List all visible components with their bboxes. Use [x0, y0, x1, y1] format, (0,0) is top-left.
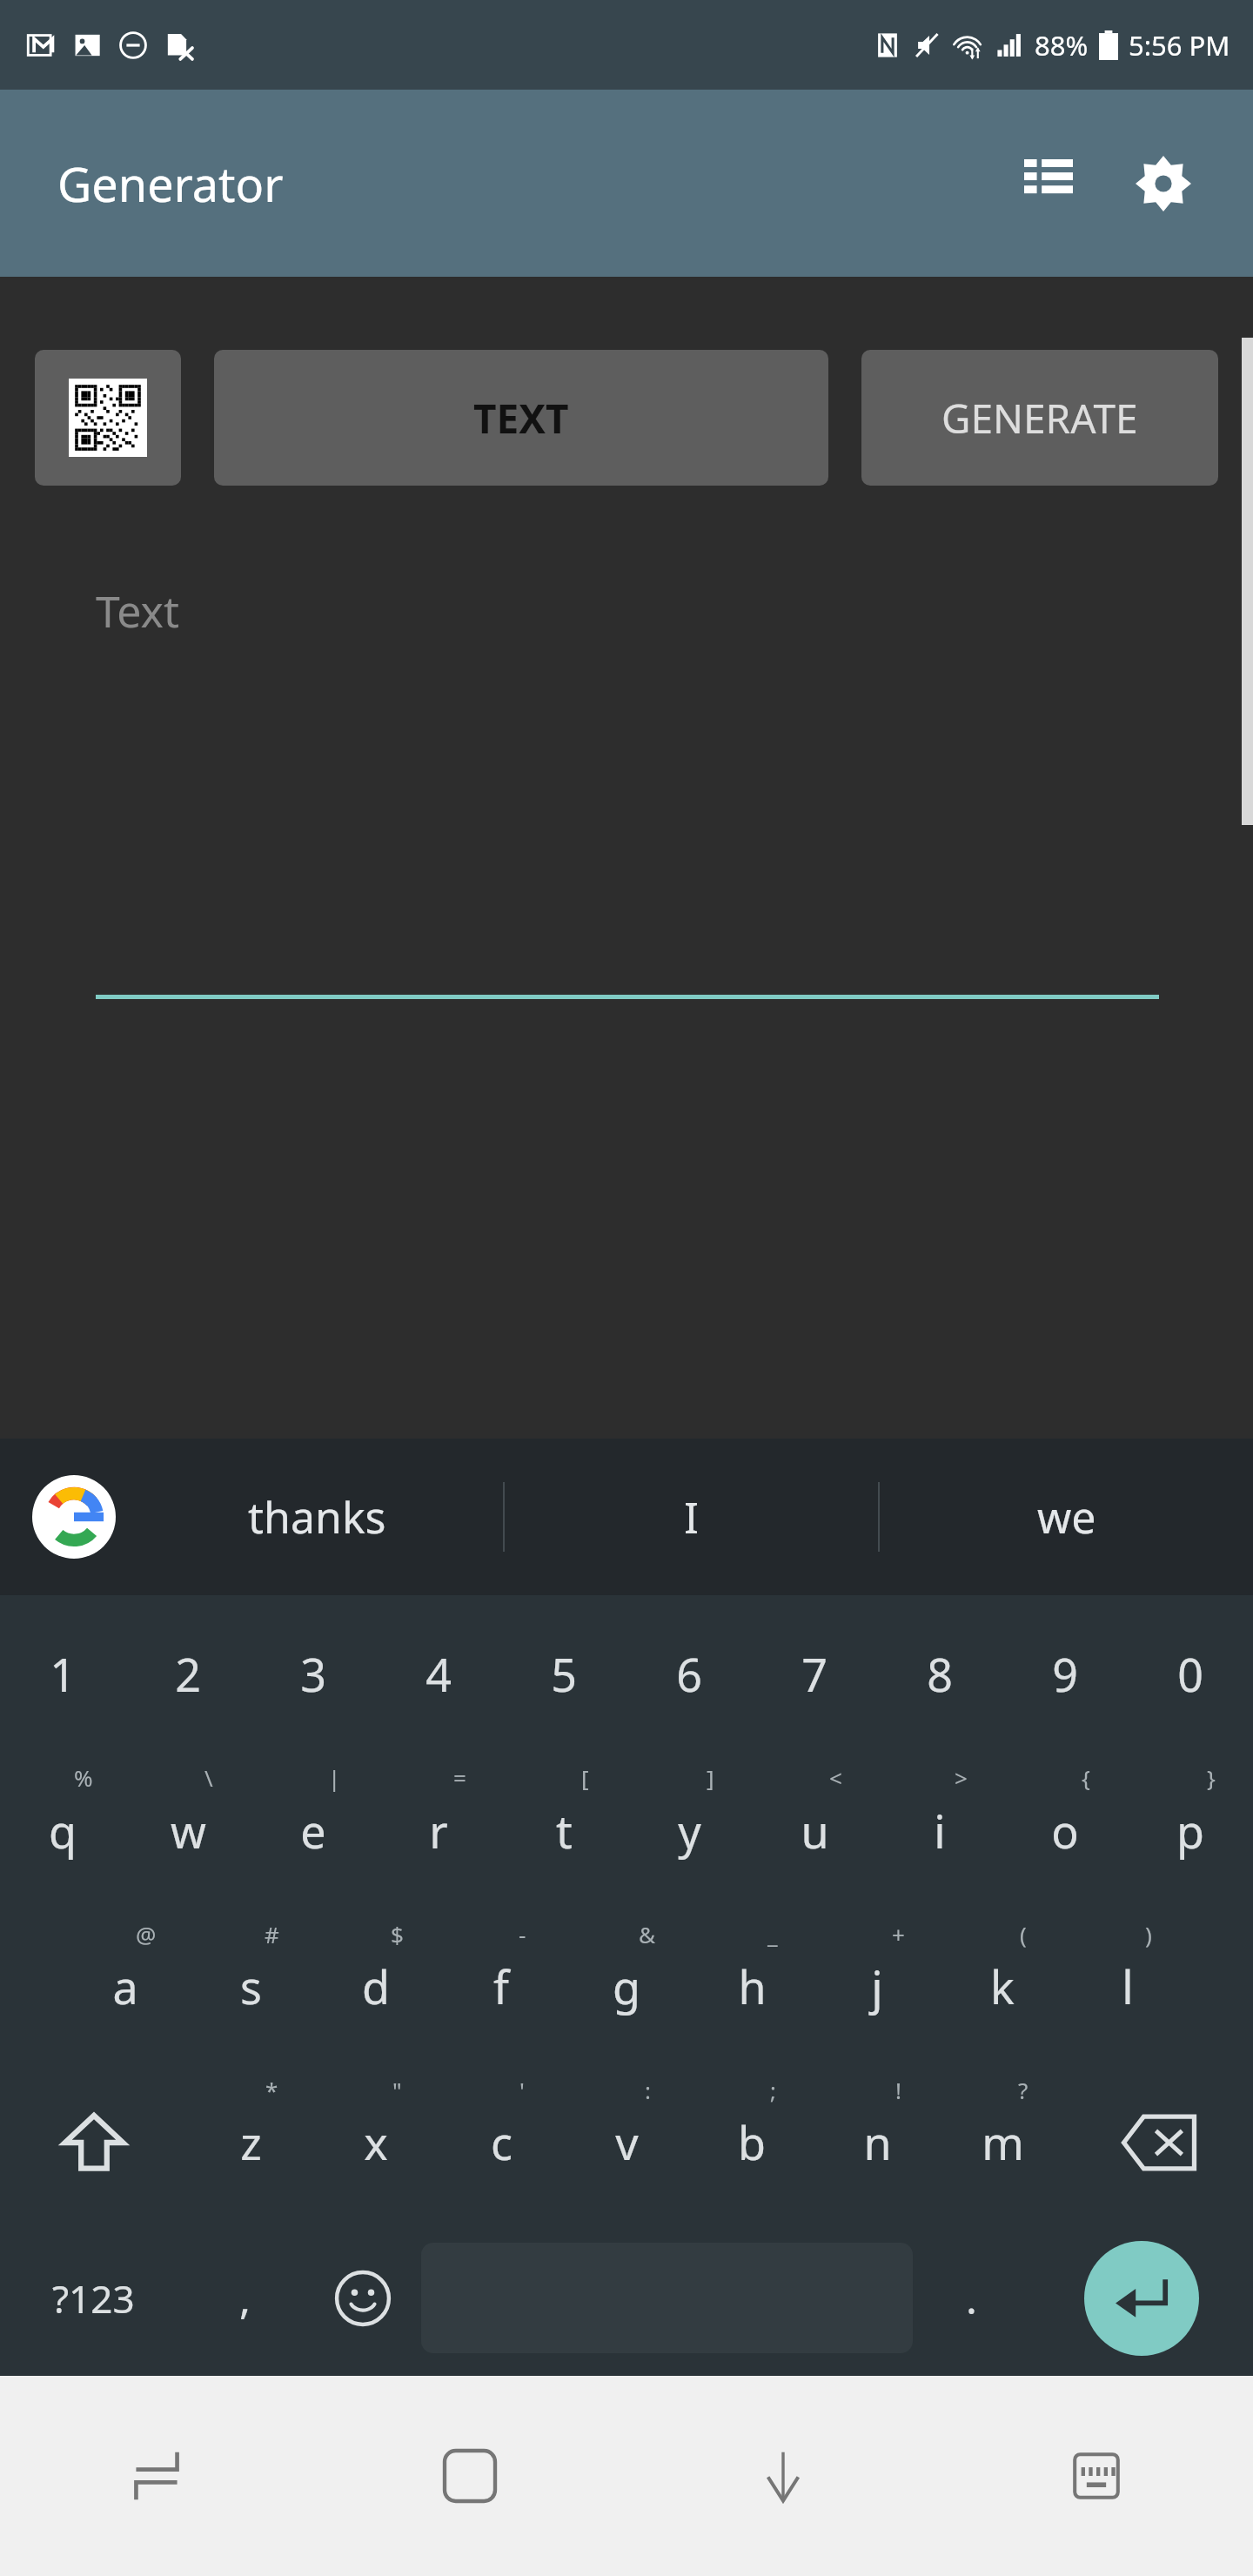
staticText: > — [955, 1762, 968, 1793]
staticText: = — [453, 1762, 466, 1793]
button[interactable]: 0 — [1128, 1595, 1253, 1752]
staticText: GENERATE — [941, 391, 1138, 446]
button[interactable]: z — [188, 2064, 313, 2220]
button[interactable]: Switch keyboard — [940, 2376, 1253, 2576]
staticText: Generator — [57, 151, 284, 216]
button[interactable]: Recent apps — [0, 2376, 313, 2576]
staticText: a — [112, 1955, 138, 2017]
button[interactable]: w — [125, 1752, 251, 1909]
button[interactable]: Enter — [1030, 2220, 1253, 2376]
button[interactable]: a — [63, 1909, 188, 2064]
staticText: h — [738, 1955, 767, 2017]
staticText: m — [982, 2111, 1024, 2173]
button[interactable]: h — [689, 1909, 814, 2064]
staticText: 9 — [1052, 1643, 1078, 1705]
button[interactable]: GENERATE — [861, 350, 1218, 486]
button[interactable]: s — [188, 1909, 313, 2064]
button[interactable]: 1 — [0, 1595, 125, 1752]
button[interactable]: we — [880, 1439, 1253, 1595]
button[interactable]: Home — [313, 2376, 626, 2576]
staticText: t — [556, 1800, 573, 1862]
button[interactable]: Barcode type — [35, 350, 181, 486]
staticText: j — [871, 1955, 883, 2017]
button[interactable]: i — [877, 1752, 1002, 1909]
staticText: 2 — [175, 1643, 201, 1705]
button[interactable]: b — [689, 2064, 814, 2220]
staticText: thanks — [248, 1487, 386, 1546]
button[interactable]: q — [0, 1752, 125, 1909]
button[interactable]: y — [626, 1752, 752, 1909]
button[interactable]: e — [251, 1752, 376, 1909]
button[interactable]: 9 — [1002, 1595, 1128, 1752]
button[interactable]: 3 — [251, 1595, 376, 1752]
staticText: , — [239, 2270, 251, 2326]
staticText: f — [493, 1955, 509, 2017]
button[interactable]: 4 — [376, 1595, 501, 1752]
button[interactable]: x — [313, 2064, 439, 2220]
button[interactable]: v — [564, 2064, 689, 2220]
staticText: 5 — [551, 1643, 577, 1705]
staticText: } — [1207, 1762, 1216, 1793]
button[interactable]: Shift — [0, 2064, 188, 2220]
button[interactable]: p — [1128, 1752, 1253, 1909]
button[interactable]: I — [505, 1439, 878, 1595]
staticText: { — [1082, 1762, 1090, 1793]
button[interactable]: , — [186, 2220, 304, 2376]
staticText: g — [613, 1955, 640, 2017]
staticText: # — [265, 1919, 279, 1949]
button[interactable]: 6 — [626, 1595, 752, 1752]
button[interactable]: g — [564, 1909, 689, 2064]
staticText: ' — [519, 2075, 525, 2105]
button[interactable]: Emoji — [304, 2220, 421, 2376]
staticText: - — [519, 1919, 526, 1949]
button[interactable]: Hide keyboard — [626, 2376, 940, 2576]
staticText: & — [639, 1919, 656, 1949]
button[interactable]: ?123 — [0, 2220, 186, 2376]
staticText: ! — [895, 2075, 901, 2105]
button[interactable]: 5 — [501, 1595, 626, 1752]
button[interactable]: History list — [1001, 136, 1096, 231]
staticText: v — [615, 2111, 639, 2173]
staticText: y — [678, 1800, 701, 1862]
button[interactable]: 8 — [877, 1595, 1002, 1752]
button[interactable]: 2 — [125, 1595, 251, 1752]
button[interactable]: j — [814, 1909, 940, 2064]
staticText: [ — [581, 1762, 589, 1793]
button[interactable]: c — [439, 2064, 564, 2220]
staticText: ; — [770, 2075, 776, 2105]
staticText: x — [364, 2111, 388, 2173]
staticText: $ — [391, 1919, 404, 1949]
button[interactable]: u — [752, 1752, 877, 1909]
button[interactable]: l — [1065, 1909, 1190, 2064]
button[interactable]: Google search — [26, 1469, 122, 1565]
button[interactable]: t — [501, 1752, 626, 1909]
staticText: 6 — [676, 1643, 702, 1705]
button[interactable]: k — [940, 1909, 1065, 2064]
button[interactable]: Backspace — [1065, 2064, 1253, 2220]
staticText: ] — [707, 1762, 714, 1793]
button[interactable]: d — [313, 1909, 439, 2064]
staticText: " — [392, 2075, 402, 2105]
staticText: d — [362, 1955, 390, 2017]
staticText: 3 — [300, 1643, 326, 1705]
staticText: 1 — [50, 1643, 76, 1705]
button[interactable]: o — [1002, 1752, 1128, 1909]
staticText: 5:56 PM — [1129, 27, 1230, 64]
button[interactable]: thanks — [131, 1439, 503, 1595]
button[interactable]: n — [814, 2064, 940, 2220]
button[interactable]: m — [940, 2064, 1065, 2220]
button[interactable]: TEXT — [214, 350, 828, 486]
button[interactable]: r — [376, 1752, 501, 1909]
staticText: i — [934, 1800, 946, 1862]
staticText: n — [863, 2111, 892, 2173]
staticText: w — [171, 1800, 206, 1862]
staticText: % — [74, 1762, 93, 1793]
button[interactable]: Settings — [1116, 136, 1211, 231]
staticText: ?123 — [52, 2272, 135, 2324]
button[interactable]: 7 — [752, 1595, 877, 1752]
button[interactable]: . — [913, 2220, 1030, 2376]
button[interactable]: Text — [96, 581, 1159, 999]
button[interactable]: f — [439, 1909, 564, 2064]
staticText: we — [1037, 1487, 1096, 1546]
